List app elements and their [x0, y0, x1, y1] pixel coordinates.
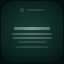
button[interactable]: [11, 27, 53, 48]
